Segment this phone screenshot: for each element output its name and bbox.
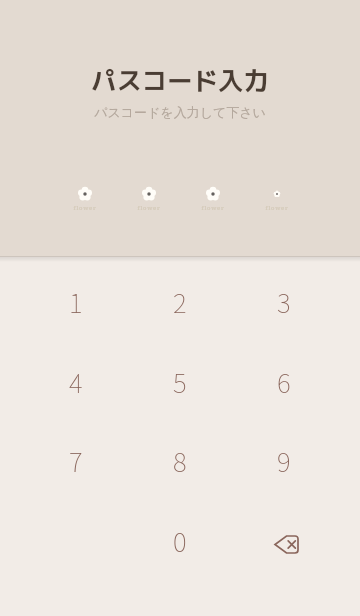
staticText: 3 <box>277 283 291 321</box>
staticText: 0 <box>173 522 187 560</box>
button[interactable]: 7 <box>36 425 116 497</box>
button[interactable]: Backspace <box>244 505 324 577</box>
other: Backspace <box>274 535 299 554</box>
staticText: 8 <box>173 442 187 480</box>
staticText: 9 <box>277 442 291 480</box>
button[interactable]: 6 <box>244 346 324 418</box>
button[interactable]: 8 <box>140 425 220 497</box>
staticText: 2 <box>173 283 187 321</box>
staticText: 1 <box>69 283 83 321</box>
staticText: 5 <box>173 363 187 401</box>
staticText: flower <box>257 204 297 212</box>
staticText: 4 <box>69 363 83 401</box>
staticText: 6 <box>277 363 291 401</box>
button[interactable]: 5 <box>140 346 220 418</box>
button[interactable]: 0 <box>140 505 220 577</box>
staticText: flower <box>193 204 233 212</box>
button[interactable]: 9 <box>244 425 324 497</box>
staticText: パスコード入力 <box>0 63 360 98</box>
button[interactable]: 4 <box>36 346 116 418</box>
staticText: 7 <box>69 442 83 480</box>
staticText: パスコードを入力して下さい <box>0 104 360 120</box>
button[interactable]: 3 <box>244 266 324 338</box>
button[interactable]: 1 <box>36 266 116 338</box>
button[interactable]: 2 <box>140 266 220 338</box>
staticText: flower <box>65 204 105 212</box>
staticText: flower <box>129 204 169 212</box>
